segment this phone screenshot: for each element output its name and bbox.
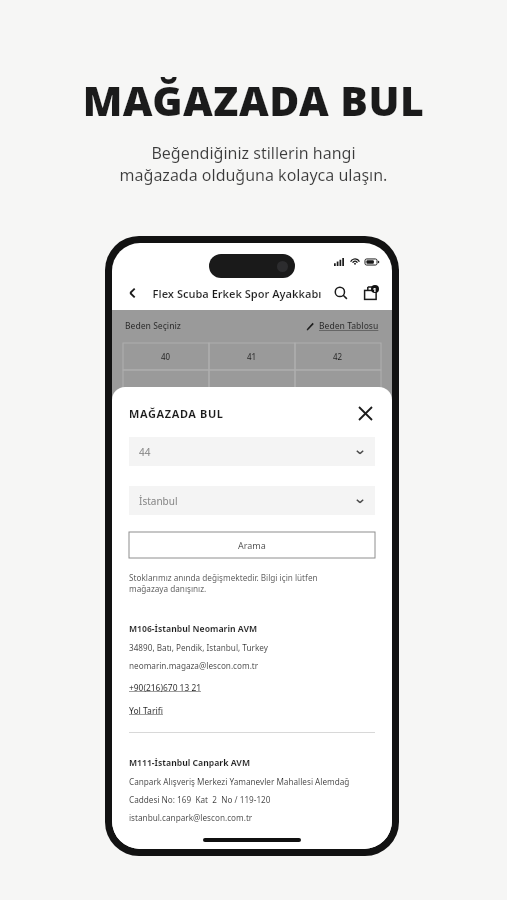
staticText: 42 (333, 351, 343, 362)
button[interactable]: Close (355, 403, 375, 423)
staticText: Beden Tablosu (319, 320, 379, 332)
button[interactable]: Yol Tarifi (129, 705, 163, 716)
button[interactable] (209, 370, 295, 397)
button[interactable]: +90(216)670 13 21 (129, 682, 201, 693)
staticText: Arama (238, 539, 266, 551)
staticText: MAĞAZADA BUL (129, 406, 224, 421)
staticText: 40 (161, 351, 171, 362)
staticText: istanbul.canpark@lescon.com.tr (129, 812, 253, 823)
staticText: Beğendiğiniz stillerin hangi mağazada ol… (0, 142, 507, 186)
button[interactable]: Arama (129, 532, 375, 558)
staticText: 1 (373, 286, 377, 293)
staticText: neomarin.magaza@lescon.com.tr (129, 660, 259, 671)
button[interactable]: İstanbul (129, 486, 375, 515)
staticText: Beden Seçiniz (125, 320, 181, 332)
staticText: +90(216)670 13 21 (129, 682, 201, 693)
staticText: MAĞAZADA BUL (0, 72, 507, 128)
button[interactable]: 41 (209, 343, 295, 370)
staticText: 34890, Batı, Pendik, Istanbul, Turkey (129, 642, 268, 653)
button[interactable]: 44 (129, 437, 375, 466)
staticText: 41 (247, 351, 257, 362)
staticText: 44 (139, 445, 151, 459)
button[interactable] (123, 370, 209, 397)
button[interactable]: 42 (295, 343, 381, 370)
staticText: Yol Tarifi (129, 705, 163, 716)
button[interactable]: Search (330, 282, 352, 304)
staticText: İstanbul (139, 494, 178, 508)
button[interactable]: 40 (123, 343, 209, 370)
staticText: Flex Scuba Erkek Spor Ayakkabı (144, 286, 330, 301)
staticText: Caddesi No: 169 Kat 2 No / 119-120 (129, 794, 271, 805)
staticText: Canpark Alışveriş Merkezi Yamanevler Mah… (129, 776, 350, 787)
button[interactable]: Cart (360, 282, 382, 304)
button[interactable]: Back (122, 282, 144, 304)
staticText: M106-İstanbul Neomarin AVM (129, 623, 258, 635)
staticText: Stoklarımız anında değişmektedir. Bilgi … (129, 572, 318, 595)
button[interactable] (295, 370, 381, 397)
staticText: M111-İstanbul Canpark AVM (129, 757, 251, 769)
